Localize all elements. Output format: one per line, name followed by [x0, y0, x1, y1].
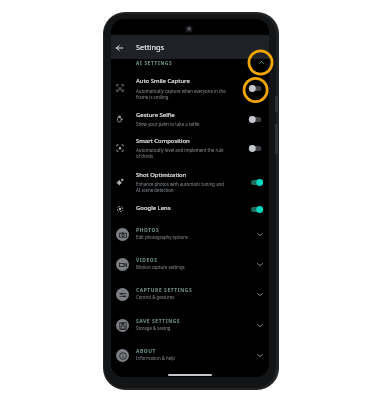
staticText: Enhance photos with automatic tuning and… [136, 181, 224, 193]
staticText: Gesture Selfie [136, 111, 175, 119]
button[interactable]: SAVE SETTINGS [111, 315, 269, 339]
staticText: Smart Composition [136, 137, 190, 145]
staticText: Google Lens [136, 204, 171, 212]
staticText: Control & gestures [136, 294, 175, 300]
button[interactable]: Smart Composition [111, 135, 269, 167]
button[interactable]: ABOUT [111, 345, 269, 369]
button[interactable]: VIDEOS [111, 254, 269, 278]
staticText: VIDEOS [136, 257, 158, 264]
button[interactable]: Collapse AI settings [255, 56, 267, 68]
button[interactable]: Auto Smile Capture [111, 75, 269, 107]
button[interactable]: Toggle Smart Composition [243, 142, 263, 154]
staticText: Edit photography options [136, 234, 188, 240]
button[interactable]: Toggle Auto Smile Capture [243, 82, 263, 94]
button[interactable]: Back [111, 37, 127, 57]
staticText: Shot Optimization [136, 171, 187, 179]
staticText: PHOTOS [136, 227, 160, 234]
button[interactable]: Shot Optimization [111, 169, 269, 201]
staticText: Automatically capture when everyone in t… [136, 88, 226, 100]
button[interactable]: Gesture Selfie [111, 109, 269, 136]
button[interactable]: Google Lens [111, 202, 269, 225]
staticText: Motion capture settings [136, 264, 185, 270]
staticText: ABOUT [136, 348, 157, 355]
staticText: Information & help [136, 355, 175, 361]
staticText: SAVE SETTINGS [136, 318, 181, 325]
button[interactable]: Toggle Gesture Selfie [243, 113, 263, 125]
button[interactable]: CAPTURE SETTINGS [111, 284, 269, 308]
staticText: Storage & saving [136, 325, 171, 331]
button[interactable]: Toggle Shot Optimization [243, 176, 263, 188]
button[interactable]: AI SETTINGS [111, 58, 269, 71]
staticText: AI SETTINGS [136, 60, 173, 66]
staticText: Auto Smile Capture [136, 77, 190, 85]
button[interactable]: Toggle Google Lens [243, 203, 263, 215]
staticText: Show your palm to take a selfie [136, 121, 200, 127]
staticText: Automatically level and implement the ru… [136, 147, 224, 159]
staticText: Settings [136, 42, 165, 52]
button[interactable]: PHOTOS [111, 224, 269, 248]
staticText: CAPTURE SETTINGS [136, 287, 193, 294]
